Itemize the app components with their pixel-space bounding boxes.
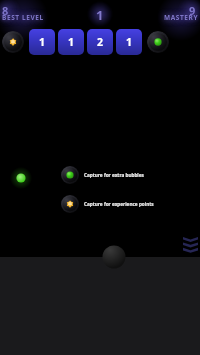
button[interactable]: Drop down [183, 236, 198, 254]
button[interactable]: 1 [58, 29, 84, 55]
staticText: Capture for extra bubbles [84, 172, 144, 178]
staticText: 2 [97, 35, 104, 49]
staticText: 1 [96, 6, 104, 24]
staticText: 1 [126, 35, 133, 49]
staticText: 8 [2, 3, 9, 18]
staticText: 1 [68, 35, 75, 49]
staticText: Capture for experience points [84, 201, 154, 207]
button[interactable]: 1 [29, 29, 55, 55]
staticText: 1 [39, 35, 46, 49]
button[interactable]: Capture for experience points [61, 195, 154, 213]
button[interactable]: Capture for extra bubbles [61, 166, 144, 184]
staticText: BEST LEVEL [2, 13, 44, 22]
button[interactable]: 1 [116, 29, 142, 55]
staticText: MASTERY [164, 13, 199, 22]
staticText: 9 [189, 3, 196, 18]
button[interactable]: Experience orb [2, 31, 24, 53]
button[interactable]: 2 [87, 29, 113, 55]
button[interactable]: Bubble orb [147, 31, 169, 53]
